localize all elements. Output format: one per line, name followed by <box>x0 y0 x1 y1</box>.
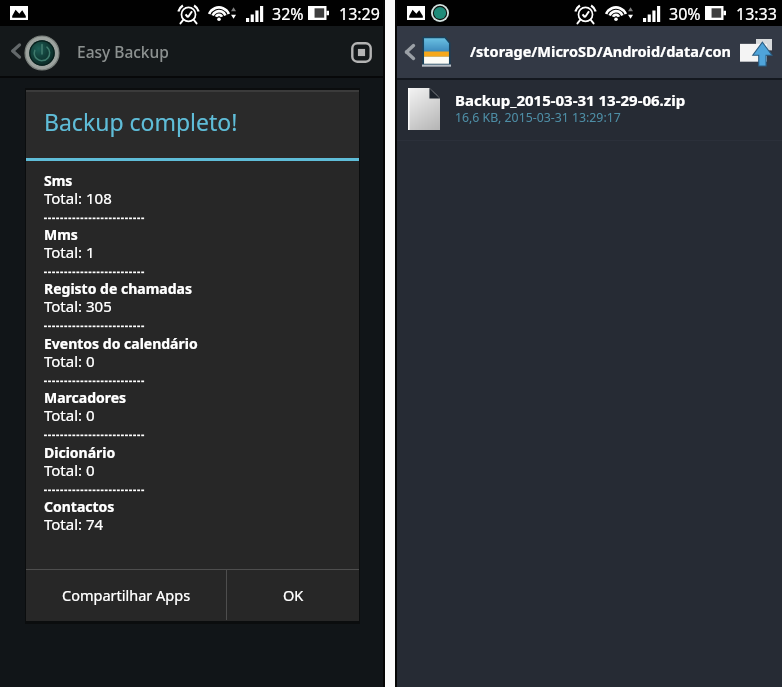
staticText: Backup_2015-03-31 13-29-06.zip <box>455 90 686 110</box>
staticText: Total: 0 <box>44 405 95 425</box>
button[interactable]: Compartilhar Apps <box>26 570 226 620</box>
staticText: 30% <box>669 3 701 25</box>
staticText: /storage/MicroSD/Android/data/con <box>470 41 731 61</box>
button[interactable]: Stop <box>347 38 375 66</box>
staticText: Total: 305 <box>44 296 112 316</box>
staticText: 32% <box>272 3 304 25</box>
staticText: 13:33 <box>736 3 777 25</box>
staticText: Mms <box>44 225 78 244</box>
button[interactable]: Back <box>4 39 28 63</box>
staticText: Dicionário <box>44 443 116 462</box>
staticText: Total: 0 <box>44 351 95 371</box>
staticText: Sms <box>44 171 73 190</box>
button[interactable]: Back <box>397 39 423 65</box>
staticText: Backup completo! <box>44 106 238 137</box>
staticText: Compartilhar Apps <box>62 585 191 605</box>
staticText: Total: 0 <box>44 460 95 480</box>
staticText: 13:29 <box>339 3 380 25</box>
button[interactable]: OK <box>227 570 359 620</box>
button[interactable]: Easy Backup <box>25 36 59 70</box>
staticText: Total: 74 <box>44 514 104 534</box>
staticText: OK <box>283 585 304 605</box>
staticText: Marcadores <box>44 388 127 407</box>
staticText: Registo de chamadas <box>44 279 192 298</box>
button[interactable]: Go up one folder <box>738 37 774 67</box>
staticText: 16,6 KB, 2015-03-31 13:29:17 <box>455 109 621 126</box>
button[interactable]: Backup_2015-03-31 13-29-06.zip <box>397 78 782 140</box>
staticText: Total: 108 <box>44 188 112 208</box>
staticText: Total: 1 <box>44 242 95 262</box>
staticText: Eventos do calendário <box>44 334 198 353</box>
staticText: Contactos <box>44 497 115 516</box>
staticText: Easy Backup <box>77 41 169 62</box>
